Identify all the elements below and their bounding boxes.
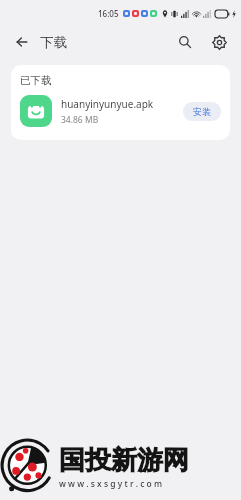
staticText: huanyinyunyue.apk xyxy=(61,97,154,111)
button[interactable]: Back xyxy=(9,29,35,55)
button[interactable]: huanyinyunyue.apk xyxy=(11,95,230,140)
button[interactable]: Settings xyxy=(206,29,232,55)
button[interactable]: 安装 xyxy=(183,102,221,121)
staticText: 下载 xyxy=(40,34,67,51)
button[interactable]: Search xyxy=(172,29,198,55)
staticText: 16:05 xyxy=(98,8,119,19)
staticText: w w w . s x s g y t r . c o m xyxy=(59,478,163,490)
staticText: 已下载 xyxy=(20,74,52,87)
staticText: 34.86 MB xyxy=(61,114,99,126)
staticText: 国投新游网 xyxy=(59,444,189,477)
staticText: 安装 xyxy=(193,106,211,117)
